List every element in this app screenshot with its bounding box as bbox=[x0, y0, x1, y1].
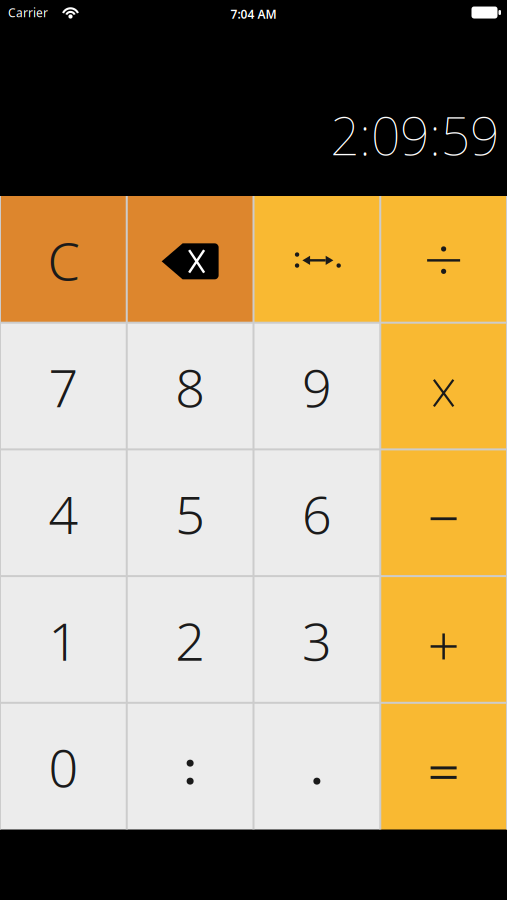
button[interactable]: 7 bbox=[0, 323, 127, 449]
button[interactable]: Colon bbox=[127, 703, 254, 829]
staticText: C bbox=[47, 226, 79, 295]
button[interactable]: 6 bbox=[253, 449, 380, 576]
button[interactable]: Divide bbox=[380, 196, 507, 323]
button[interactable]: Backspace bbox=[127, 196, 254, 323]
button[interactable]: Convert between time and decimal bbox=[253, 196, 380, 323]
staticText: 7:04 AM bbox=[230, 6, 276, 22]
staticText: 6 bbox=[302, 479, 332, 548]
button[interactable]: 4 bbox=[0, 449, 127, 576]
staticText: 9 bbox=[302, 352, 332, 422]
button[interactable]: Add bbox=[380, 576, 507, 703]
button[interactable]: 2 bbox=[127, 576, 254, 703]
staticText: 4 bbox=[48, 479, 78, 548]
button[interactable]: Subtract bbox=[380, 449, 507, 576]
staticText: Carrier bbox=[8, 4, 48, 20]
staticText: 0 bbox=[48, 733, 78, 802]
button[interactable]: 0 bbox=[0, 703, 127, 829]
button[interactable]: 8 bbox=[127, 323, 254, 449]
button[interactable]: C bbox=[0, 196, 127, 323]
button[interactable]: 3 bbox=[253, 576, 380, 703]
staticText: 1 bbox=[48, 606, 78, 675]
button[interactable]: Decimal point bbox=[253, 703, 380, 829]
button[interactable]: 1 bbox=[0, 576, 127, 703]
button[interactable]: 9 bbox=[253, 323, 380, 449]
staticText: 7 bbox=[48, 352, 78, 422]
staticText: 3 bbox=[302, 606, 332, 675]
button[interactable]: Multiply bbox=[380, 323, 507, 449]
staticText: 5 bbox=[175, 479, 205, 548]
staticText: 2 bbox=[175, 606, 205, 675]
button[interactable]: Equals bbox=[380, 703, 507, 829]
staticText: 2:09:59 bbox=[325, 99, 499, 170]
staticText: 8 bbox=[175, 352, 205, 422]
button[interactable]: 5 bbox=[127, 449, 254, 576]
